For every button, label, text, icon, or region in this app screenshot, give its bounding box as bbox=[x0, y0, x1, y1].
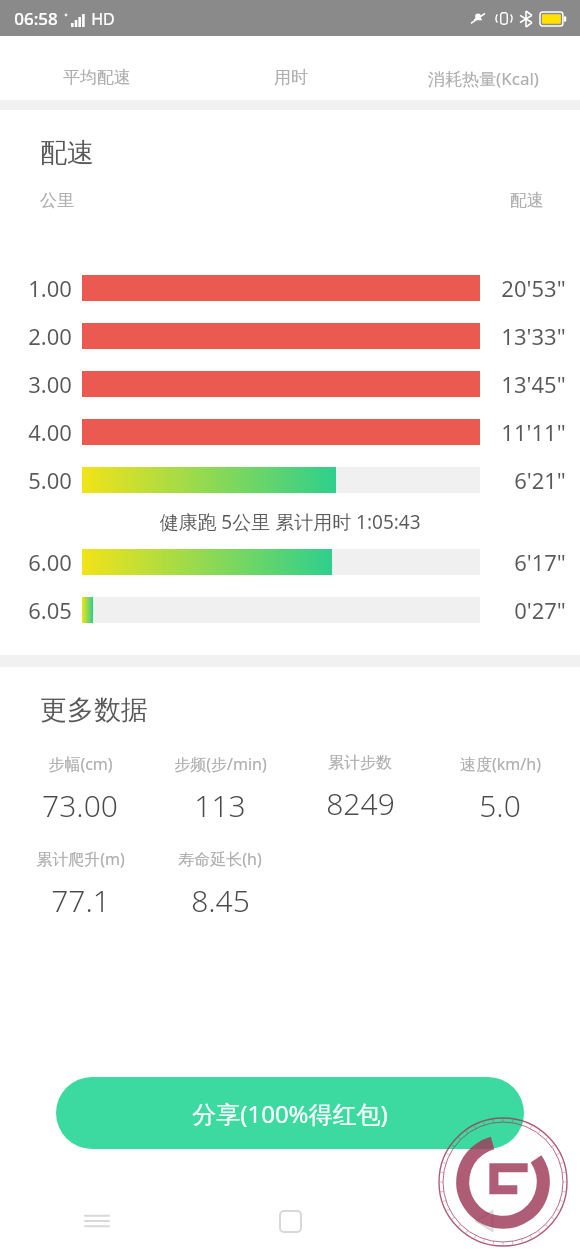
staticText: 配速 bbox=[510, 190, 544, 211]
staticText: 5.00 bbox=[28, 465, 72, 495]
staticText: 公里 bbox=[40, 190, 74, 211]
staticText: 77.1 bbox=[51, 880, 110, 921]
staticText: 步幅(cm) bbox=[48, 753, 113, 775]
staticText: 8.45 bbox=[191, 880, 250, 921]
staticText: 累计爬升(m) bbox=[36, 848, 125, 870]
staticText: 用时 bbox=[274, 67, 308, 88]
staticText: 1.00 bbox=[28, 273, 72, 303]
staticText: 11'11" bbox=[501, 417, 566, 447]
staticText: 健康跑 5公里 累计用时 1:05:43 bbox=[159, 509, 421, 535]
staticText: 寿命延长(h) bbox=[178, 848, 262, 870]
staticText: 分享(100%得红包) bbox=[192, 1097, 388, 1130]
staticText: 消耗热量(Kcal) bbox=[428, 67, 539, 90]
staticText: 113 bbox=[194, 785, 246, 826]
staticText: 20'53" bbox=[501, 273, 566, 303]
staticText: 73.00 bbox=[42, 785, 118, 826]
staticText: 累计步数 bbox=[328, 753, 392, 773]
staticText: 06:58 bbox=[14, 7, 58, 30]
button[interactable]: Home bbox=[194, 1185, 387, 1257]
staticText: 4.00 bbox=[28, 417, 72, 447]
staticText: 2.00 bbox=[28, 321, 72, 351]
staticText: HD bbox=[91, 8, 115, 30]
staticText: 步频(步/min) bbox=[174, 753, 267, 775]
button[interactable]: 分享(100%得红包) bbox=[56, 1077, 524, 1149]
staticText: 5.0 bbox=[479, 785, 521, 826]
button[interactable]: Back bbox=[387, 1185, 580, 1257]
button[interactable]: Recent apps bbox=[0, 1185, 194, 1257]
staticText: 平均配速 bbox=[63, 67, 131, 88]
staticText: 6.05 bbox=[28, 595, 72, 625]
staticText: 8249 bbox=[326, 783, 395, 824]
staticText: 6.00 bbox=[28, 547, 72, 577]
staticText: 速度(km/h) bbox=[460, 753, 541, 775]
staticText: 3.00 bbox=[28, 369, 72, 399]
staticText: 配速 bbox=[40, 136, 94, 170]
staticText: 6'17" bbox=[514, 547, 566, 577]
staticText: 0'27" bbox=[514, 595, 566, 625]
staticText: 6'21" bbox=[514, 465, 566, 495]
staticText: 13'33" bbox=[501, 321, 566, 351]
staticText: 13'45" bbox=[501, 369, 566, 399]
staticText: 更多数据 bbox=[40, 693, 148, 727]
